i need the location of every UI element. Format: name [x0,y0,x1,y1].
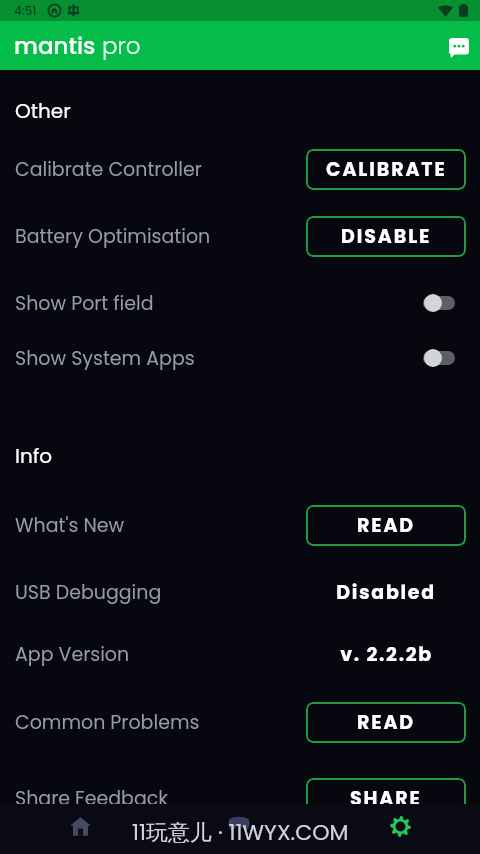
staticText: Other [15,97,71,125]
staticText: Show System Apps [15,345,195,372]
staticText: App Version [15,641,130,668]
button[interactable]: CALIBRATE [306,149,466,190]
staticText: Disabled [336,579,436,606]
staticText: pro [102,30,141,62]
staticText: Calibrate Controller [15,156,202,183]
staticText: Info [15,442,53,470]
staticText: DISABLE [341,223,432,250]
staticText: READ [357,512,416,539]
button[interactable]: DISABLE [306,216,466,257]
staticText: USB Debugging [15,579,162,606]
staticText: mantis [14,30,96,62]
button[interactable]: READ [306,505,466,546]
staticText: SHARE [350,785,422,812]
button[interactable] [306,343,466,373]
staticText: READ [357,709,416,736]
staticText: 11玩意儿 · 11WYX.COM [132,817,349,848]
staticText: 4:51 [14,2,37,19]
button[interactable]: Home [62,808,98,844]
staticText: Common Problems [15,709,200,736]
staticText: CALIBRATE [326,156,447,183]
button[interactable]: Settings [382,808,418,844]
staticText: v. 2.2.2b [340,641,433,668]
button[interactable]: READ [306,702,466,743]
button[interactable] [306,288,466,318]
button[interactable]: SHARE [306,778,466,819]
staticText: Share Feedback [15,785,169,812]
staticText: Show Port field [15,290,154,317]
button[interactable]: Messages [439,28,479,68]
staticText: What's New [15,512,125,539]
staticText: Battery Optimisation [15,223,211,250]
